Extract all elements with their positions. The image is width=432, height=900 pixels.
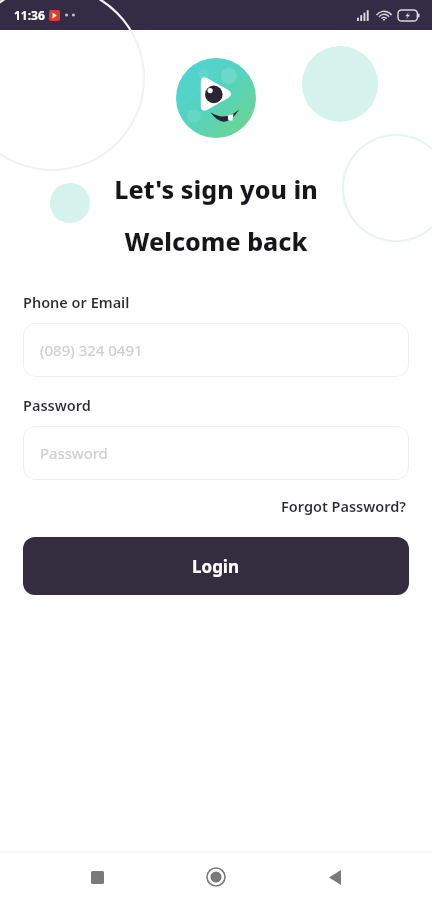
staticText: Login	[192, 555, 240, 578]
button[interactable]: Password	[23, 426, 409, 480]
staticText: Let's sign you in	[0, 172, 432, 206]
staticText: 11:36	[14, 7, 45, 23]
button[interactable]: Home	[194, 855, 238, 899]
button[interactable]: Recents	[75, 855, 119, 899]
staticText: Forgot Password?	[281, 496, 407, 516]
staticText: Password	[23, 395, 91, 415]
staticText: Password	[40, 443, 108, 463]
button[interactable]: (089) 324 0491	[23, 323, 409, 377]
button[interactable]: Back	[313, 855, 357, 899]
button[interactable]: Login	[23, 537, 409, 595]
staticText: (089) 324 0491	[40, 340, 143, 360]
button[interactable]: Forgot Password?	[279, 493, 409, 519]
staticText: Welcome back	[0, 224, 432, 258]
staticText: Phone or Email	[23, 292, 130, 312]
other: App logo	[176, 58, 256, 138]
